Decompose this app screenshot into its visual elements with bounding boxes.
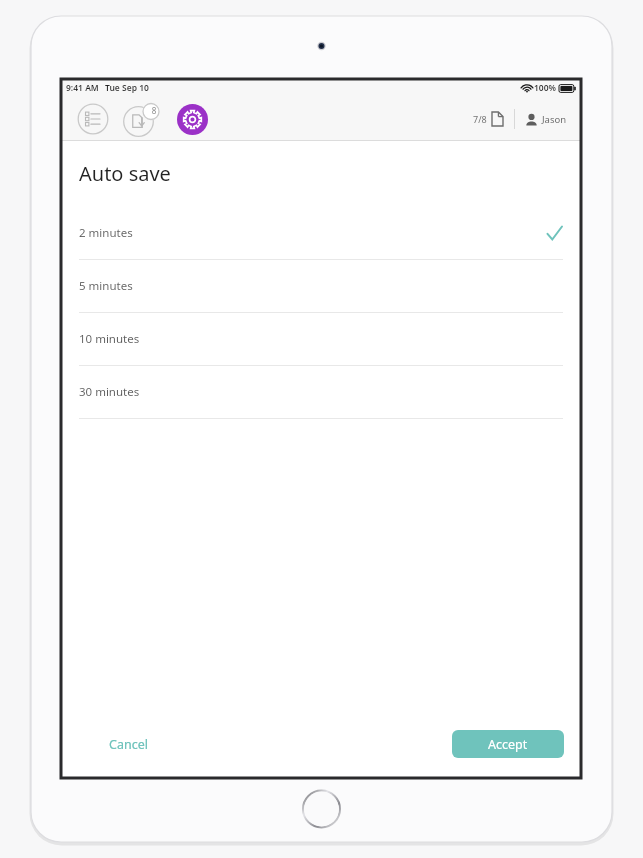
staticText: 10 minutes [79, 331, 140, 347]
staticText: Accept [488, 736, 528, 753]
button[interactable]: Cancel [101, 730, 156, 759]
button[interactable]: 5 minutes [61, 260, 581, 312]
staticText: 7/8 [473, 113, 487, 125]
staticText: 30 minutes [79, 384, 140, 400]
staticText: 8 [148, 105, 160, 116]
button[interactable]: 2 minutes [61, 207, 581, 259]
button[interactable]: Jason [523, 109, 569, 130]
button[interactable]: 10 minutes [61, 313, 581, 365]
staticText: 9:41 AM [66, 82, 99, 94]
button[interactable]: 7/8 [471, 107, 506, 131]
staticText: 5 minutes [79, 278, 133, 294]
button[interactable]: Settings [177, 104, 208, 135]
staticText: 100% [534, 82, 557, 94]
staticText: 2 minutes [79, 225, 133, 241]
staticText: Tue Sep 10 [105, 82, 149, 94]
button[interactable]: Downloads, 8 items [123, 101, 163, 137]
button[interactable]: 30 minutes [61, 366, 581, 418]
button[interactable]: List [77, 103, 109, 135]
button[interactable]: Accept [452, 730, 564, 758]
staticText: Jason [542, 113, 567, 126]
staticText: Auto save [79, 160, 171, 187]
staticText: Cancel [109, 736, 148, 753]
